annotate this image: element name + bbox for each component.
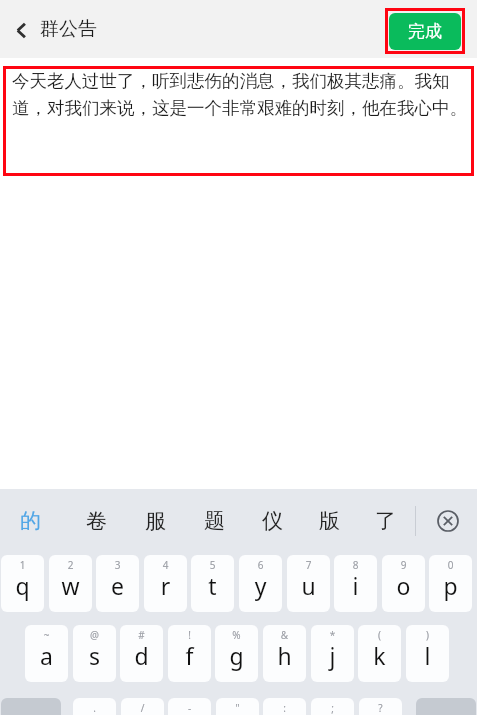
button[interactable]: 题 (190, 492, 238, 550)
staticText: j (311, 640, 354, 671)
button[interactable]: 了 (361, 492, 409, 550)
button[interactable]: Delete (424, 497, 472, 545)
button[interactable]: " (216, 698, 259, 715)
staticText: 9 (382, 558, 425, 572)
button[interactable]: 9 (382, 555, 425, 612)
button[interactable]: 卷 (72, 492, 120, 550)
button[interactable]: ! (168, 625, 211, 682)
button[interactable]: 8 (334, 555, 377, 612)
staticText: * (311, 628, 354, 642)
staticText: 卷 (86, 508, 107, 534)
button[interactable]: . (73, 698, 116, 715)
button[interactable]: 群公告 (40, 12, 97, 46)
staticText: 版 (319, 508, 340, 534)
staticText: p (429, 570, 472, 601)
staticText: d (120, 640, 163, 671)
staticText: 今天老人过世了，听到悲伤的消息，我们极其悲痛。我知道，对我们来说，这是一个非常艰… (12, 70, 470, 119)
staticText: 1 (1, 558, 44, 572)
staticText: 群公告 (40, 17, 97, 41)
staticText: w (49, 570, 92, 601)
staticText: & (263, 628, 306, 642)
staticText: u (287, 570, 330, 601)
button[interactable]: : (263, 698, 306, 715)
staticText: / (121, 701, 164, 715)
staticText: l (406, 640, 449, 671)
button[interactable]: 0 (429, 555, 472, 612)
staticText: ! (168, 628, 211, 642)
staticText: e (96, 570, 139, 601)
button[interactable]: Back (4, 13, 38, 47)
button[interactable]: / (121, 698, 164, 715)
button[interactable]: 2 (49, 555, 92, 612)
staticText: 8 (334, 558, 377, 572)
button[interactable]: 仪 (248, 492, 296, 550)
button[interactable]: Backspace (416, 698, 476, 715)
staticText: q (1, 570, 44, 601)
button[interactable]: - (168, 698, 211, 715)
staticText: i (334, 570, 377, 601)
staticText: 3 (96, 558, 139, 572)
button[interactable]: 的 (6, 492, 54, 550)
staticText: ( (358, 628, 401, 642)
button[interactable]: 6 (239, 555, 282, 612)
staticText: s (73, 640, 116, 671)
staticText: ~ (25, 628, 68, 642)
button[interactable]: * (311, 625, 354, 682)
staticText: 5 (191, 558, 234, 572)
staticText: 0 (429, 558, 472, 572)
staticText: 了 (375, 508, 396, 534)
staticText: " (216, 701, 259, 715)
staticText: t (191, 570, 234, 601)
staticText: # (120, 628, 163, 642)
staticText: r (144, 570, 187, 601)
staticText: : (263, 701, 306, 715)
button[interactable]: @ (73, 625, 116, 682)
staticText: ? (359, 701, 402, 715)
staticText: 完成 (408, 21, 442, 42)
staticText: - (168, 701, 211, 715)
staticText: f (168, 640, 211, 671)
staticText: 仪 (262, 508, 283, 534)
button[interactable]: 3 (96, 555, 139, 612)
button[interactable]: 服 (131, 492, 179, 550)
staticText: y (239, 570, 282, 601)
staticText: 6 (239, 558, 282, 572)
button[interactable]: & (263, 625, 306, 682)
staticText: a (25, 640, 68, 671)
staticText: o (382, 570, 425, 601)
staticText: ) (406, 628, 449, 642)
button[interactable]: % (215, 625, 258, 682)
button[interactable]: 版 (305, 492, 353, 550)
button[interactable]: Shift (1, 698, 61, 715)
staticText: % (215, 628, 258, 642)
staticText: . (73, 701, 116, 715)
button[interactable]: ( (358, 625, 401, 682)
button[interactable]: 5 (191, 555, 234, 612)
button[interactable]: 1 (1, 555, 44, 612)
staticText: 题 (204, 508, 225, 534)
button[interactable]: # (120, 625, 163, 682)
button[interactable]: 4 (144, 555, 187, 612)
button[interactable]: ; (311, 698, 354, 715)
button[interactable]: 7 (287, 555, 330, 612)
staticText: 的 (20, 508, 41, 534)
staticText: k (358, 640, 401, 671)
button[interactable]: 完成 (389, 13, 461, 50)
staticText: h (263, 640, 306, 671)
staticText: 服 (145, 508, 166, 534)
staticText: 4 (144, 558, 187, 572)
button[interactable]: 今天老人过世了，听到悲伤的消息，我们极其悲痛。我知道，对我们来说，这是一个非常艰… (3, 66, 474, 176)
staticText: 7 (287, 558, 330, 572)
button[interactable]: ? (359, 698, 402, 715)
button[interactable]: ~ (25, 625, 68, 682)
staticText: 2 (49, 558, 92, 572)
staticText: @ (73, 628, 116, 642)
staticText: ; (311, 701, 354, 715)
button[interactable]: ) (406, 625, 449, 682)
staticText: g (215, 640, 258, 671)
